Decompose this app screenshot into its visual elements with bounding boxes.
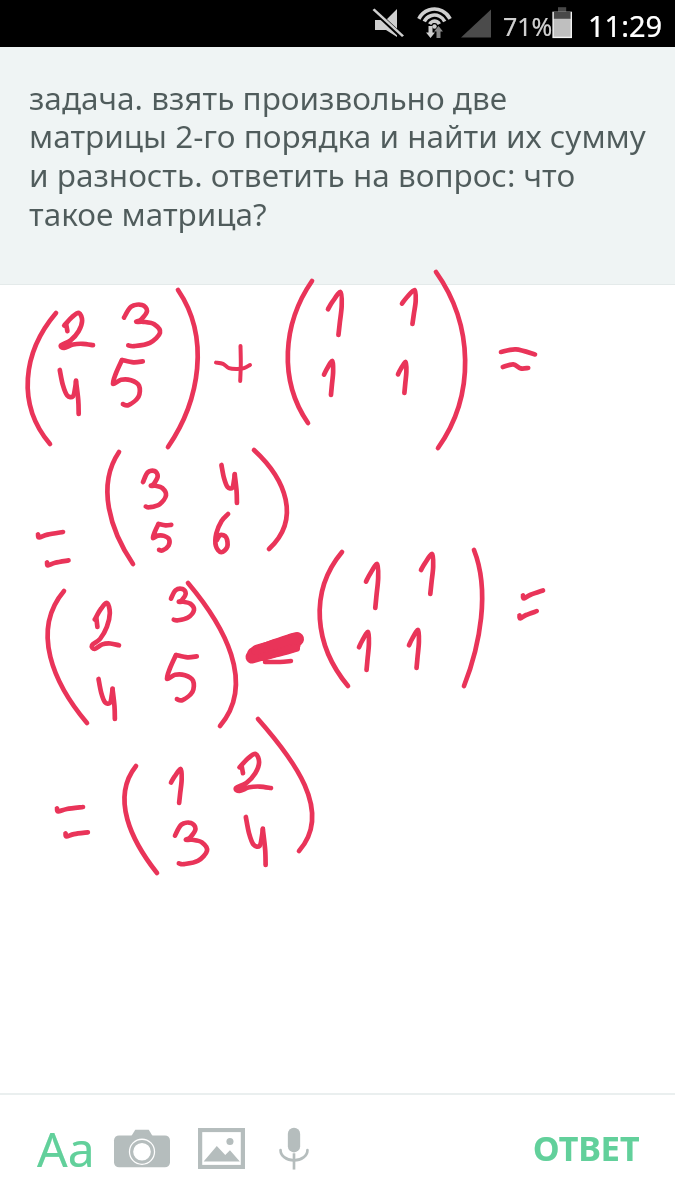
button[interactable]: Take photo bbox=[106, 1116, 178, 1180]
staticText: ОТВЕТ bbox=[533, 1125, 640, 1171]
staticText: задача. взять произвольно две матрицы 2-… bbox=[29, 76, 646, 236]
button[interactable]: Answer drawing area bbox=[0, 285, 675, 1093]
button[interactable]: Aa bbox=[28, 1113, 104, 1183]
staticText: 11:29 bbox=[588, 6, 663, 45]
staticText: Aa bbox=[37, 1116, 95, 1181]
button[interactable]: Voice input bbox=[264, 1116, 324, 1180]
staticText: 71% bbox=[503, 9, 553, 43]
button[interactable]: Pick image bbox=[188, 1116, 254, 1180]
button[interactable]: задача. взять произвольно две матрицы 2-… bbox=[0, 47, 675, 285]
button[interactable]: ОТВЕТ bbox=[513, 1105, 660, 1191]
